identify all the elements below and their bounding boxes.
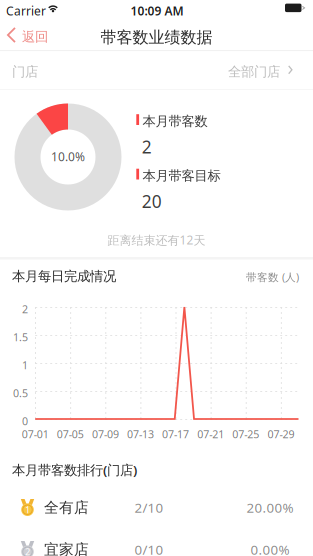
staticText: Carrier [6, 3, 46, 19]
staticText: 07-29 [267, 427, 294, 441]
staticText: 全部门店 [228, 64, 280, 80]
staticText: 20 [142, 190, 162, 213]
staticText: 2 [25, 545, 30, 556]
staticText: 2 [22, 302, 28, 316]
staticText: 10.0% [51, 148, 85, 164]
staticText: 1.5 [13, 330, 28, 344]
staticText: 07-13 [127, 427, 154, 441]
staticText: 返回 [22, 28, 48, 45]
button[interactable]: 返回 [0, 20, 62, 50]
staticText: 0.00% [250, 541, 289, 556]
staticText: 带客数业绩数据 [100, 27, 212, 47]
staticText: 0/10 [134, 541, 163, 556]
staticText: 07-25 [232, 427, 259, 441]
staticText: 距离结束还有12天 [107, 232, 205, 248]
staticText: 全有店 [44, 498, 89, 516]
staticText: 本月带客目标 [143, 167, 221, 184]
staticText: 宜家店 [44, 540, 89, 556]
staticText: 2/10 [134, 499, 163, 516]
staticText: 07-17 [162, 427, 189, 441]
staticText: 带客数 (人) [246, 270, 299, 284]
staticText: 1 [25, 503, 30, 516]
staticText: 门店 [12, 64, 38, 80]
staticText: 1 [22, 358, 28, 372]
staticText: 20.00% [246, 499, 293, 516]
button[interactable]: 门店 [0, 51, 313, 89]
button[interactable]: 1 [0, 487, 313, 528]
staticText: 0.5 [13, 386, 28, 400]
staticText: 2 [142, 135, 152, 158]
staticText: 10:09 AM [130, 3, 183, 19]
staticText: 07-01 [22, 427, 49, 441]
staticText: 07-21 [197, 427, 224, 441]
button[interactable]: 2 [0, 529, 313, 556]
staticText: 07-05 [57, 427, 84, 441]
staticText: 本月每日完成情况 [12, 268, 116, 284]
staticText: 07-09 [92, 427, 119, 441]
staticText: 本月带客数 [143, 113, 208, 129]
staticText: 0 [22, 414, 28, 428]
staticText: 本月带客数排行(门店) [12, 461, 137, 479]
